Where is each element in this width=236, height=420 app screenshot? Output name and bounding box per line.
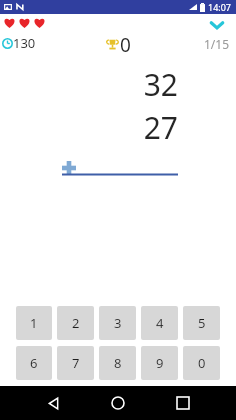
button[interactable]: 6 (16, 346, 52, 380)
staticText: 0 (120, 32, 131, 56)
button[interactable]: 1 (16, 306, 52, 340)
staticText: 1/15 (204, 36, 230, 52)
staticText: 2 (72, 314, 80, 332)
button[interactable]: Back (40, 390, 66, 416)
staticText: 9 (156, 354, 164, 372)
button[interactable]: 3 (99, 306, 136, 340)
button[interactable]: Recent apps (170, 390, 196, 416)
staticText: 32 (143, 64, 178, 105)
button[interactable]: Home (105, 390, 131, 416)
button[interactable]: 0 (183, 346, 220, 380)
button[interactable]: 8 (99, 346, 136, 380)
button[interactable]: 7 (57, 346, 94, 380)
button[interactable]: 9 (141, 346, 178, 380)
button[interactable]: Expand (208, 16, 226, 34)
staticText: 27 (143, 107, 178, 148)
button[interactable]: 2 (57, 306, 94, 340)
button[interactable]: 5 (183, 306, 220, 340)
staticText: 130 (13, 34, 36, 52)
staticText: 5 (198, 314, 206, 332)
staticText: 4 (156, 314, 164, 332)
staticText: 14:07 (208, 1, 232, 13)
button[interactable]: 4 (141, 306, 178, 340)
staticText: 3 (114, 314, 122, 332)
staticText: 7 (72, 354, 80, 372)
staticText: 6 (30, 354, 38, 372)
staticText: 0 (198, 354, 206, 372)
staticText: 8 (114, 354, 122, 372)
staticText: 1 (30, 314, 38, 332)
